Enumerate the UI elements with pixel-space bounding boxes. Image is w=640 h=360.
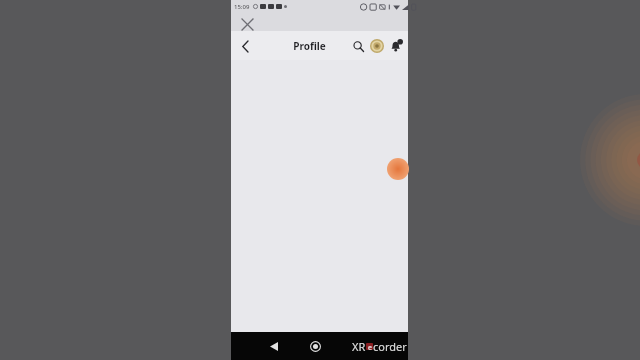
staticText: e (368, 343, 372, 350)
button[interactable]: Back (235, 36, 255, 56)
button[interactable]: Rewards (368, 37, 386, 55)
button[interactable]: Close (236, 13, 258, 35)
button[interactable]: Back (265, 337, 283, 355)
staticText: Profile (293, 39, 326, 53)
button[interactable]: Search (349, 37, 367, 55)
staticText: corder (373, 339, 407, 354)
staticText: XR (352, 339, 366, 354)
staticText: 15:09 (234, 3, 250, 11)
button[interactable]: Notifications (387, 37, 405, 55)
button[interactable]: Home (306, 337, 324, 355)
